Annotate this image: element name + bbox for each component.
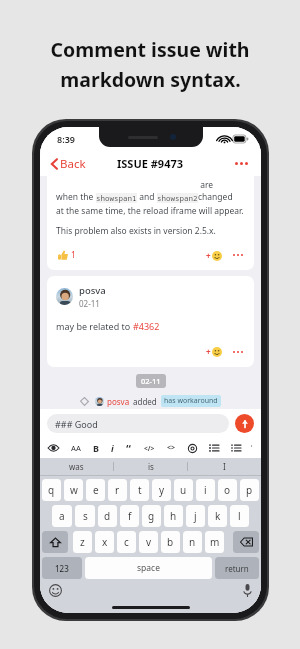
button[interactable]: i	[196, 479, 215, 501]
staticText: posva	[107, 396, 130, 407]
button[interactable]: r	[108, 479, 127, 501]
staticText: t	[138, 483, 142, 497]
staticText: This problem also exists in version 2.5.…	[56, 225, 216, 237]
other: Thumbs up	[58, 250, 68, 260]
button[interactable]: t	[130, 479, 149, 501]
button[interactable]: a	[52, 505, 72, 527]
button[interactable]: Backspace	[233, 531, 259, 553]
button[interactable]: d	[98, 505, 117, 527]
button[interactable]: Send	[235, 414, 254, 433]
button[interactable]: Emoji	[49, 584, 62, 597]
staticText: +	[206, 250, 211, 261]
button[interactable]: c	[117, 531, 136, 553]
button[interactable]: Code	[142, 442, 157, 455]
button[interactable]: Preview	[46, 442, 61, 454]
staticText: h	[170, 509, 177, 523]
staticText: r	[115, 483, 120, 497]
staticText: markdown syntax.	[60, 66, 241, 93]
staticText: j	[194, 509, 197, 523]
staticText: ### Good	[55, 418, 98, 430]
button[interactable]: Heading	[69, 441, 83, 455]
staticText: Back	[60, 156, 86, 172]
button[interactable]: u	[174, 479, 193, 501]
button[interactable]: Quote	[124, 439, 133, 458]
button[interactable]: Bulleted list	[207, 442, 221, 454]
button[interactable]: return	[215, 557, 259, 579]
staticText: v	[146, 535, 152, 549]
button[interactable]: Dictation	[243, 584, 252, 597]
button[interactable]: f	[120, 505, 139, 527]
button[interactable]: Mention	[186, 442, 199, 455]
button[interactable]: q	[42, 479, 61, 501]
button[interactable]: Thumbs up	[56, 247, 78, 263]
staticText: 02-11	[141, 376, 161, 386]
button[interactable]: Italic	[109, 440, 116, 456]
staticText: i	[111, 442, 114, 454]
staticText: showspan1	[96, 193, 137, 203]
button[interactable]: ### Good	[47, 414, 229, 433]
button[interactable]: space	[85, 557, 212, 579]
staticText: n	[189, 535, 196, 549]
button[interactable]: v	[139, 531, 158, 553]
button[interactable]: when the	[47, 176, 254, 270]
button[interactable]: l	[230, 505, 249, 527]
button[interactable]: 123	[42, 557, 82, 579]
button[interactable]: Numbered list	[229, 442, 243, 454]
button[interactable]: j	[186, 505, 205, 527]
button[interactable]: Bold	[91, 440, 101, 456]
staticText: p	[246, 483, 253, 497]
staticText: 1	[71, 249, 76, 261]
staticText: g	[148, 509, 155, 523]
button[interactable]: o	[218, 479, 237, 501]
button[interactable]: y	[152, 479, 171, 501]
staticText: at the same time, the reload iframe will…	[56, 205, 244, 217]
staticText: w	[70, 483, 78, 497]
button[interactable]: posva	[47, 276, 254, 367]
staticText: space	[137, 562, 160, 574]
button[interactable]: k	[208, 505, 227, 527]
staticText: <>	[167, 443, 176, 453]
button[interactable]: g	[142, 505, 161, 527]
button[interactable]: w	[64, 479, 83, 501]
button[interactable]: is	[114, 458, 187, 475]
button[interactable]: x	[95, 531, 114, 553]
button[interactable]: I	[188, 458, 261, 475]
staticText: I	[223, 461, 226, 472]
button[interactable]: More options	[231, 158, 252, 169]
staticText: i	[204, 483, 207, 497]
button[interactable]: p	[240, 479, 259, 501]
staticText: has workaround	[164, 396, 218, 406]
staticText: x	[102, 535, 108, 549]
button[interactable]: z	[73, 531, 92, 553]
button[interactable]: Link	[165, 441, 178, 455]
button[interactable]: n	[183, 531, 202, 553]
staticText: showspan2	[157, 193, 198, 203]
staticText: is	[148, 461, 154, 472]
button[interactable]: Add reaction	[204, 248, 224, 263]
button[interactable]: e	[86, 479, 105, 501]
staticText: b	[167, 535, 174, 549]
staticText: AA	[71, 443, 81, 453]
staticText: k	[215, 509, 221, 523]
button[interactable]: b	[161, 531, 180, 553]
button[interactable]: was	[40, 458, 113, 475]
staticText: when the	[56, 191, 96, 203]
staticText: y	[159, 483, 165, 497]
button[interactable]: Shift	[42, 531, 68, 553]
button[interactable]: m	[205, 531, 224, 553]
button[interactable]: h	[164, 505, 183, 527]
button[interactable]: Back	[48, 153, 89, 175]
staticText: 8:39	[57, 133, 75, 145]
staticText: </>	[144, 444, 155, 453]
staticText: u	[180, 483, 187, 497]
staticText: and	[137, 191, 157, 203]
staticText: e	[93, 483, 99, 497]
staticText: f	[128, 509, 132, 523]
button[interactable]: Add reaction	[204, 344, 224, 359]
button[interactable]: Comment options	[231, 252, 245, 258]
button[interactable]: s	[75, 505, 95, 527]
button[interactable]: Comment options	[231, 349, 245, 355]
staticText: m	[210, 535, 220, 549]
staticText: “	[126, 441, 131, 456]
staticText: are changed	[198, 179, 245, 203]
